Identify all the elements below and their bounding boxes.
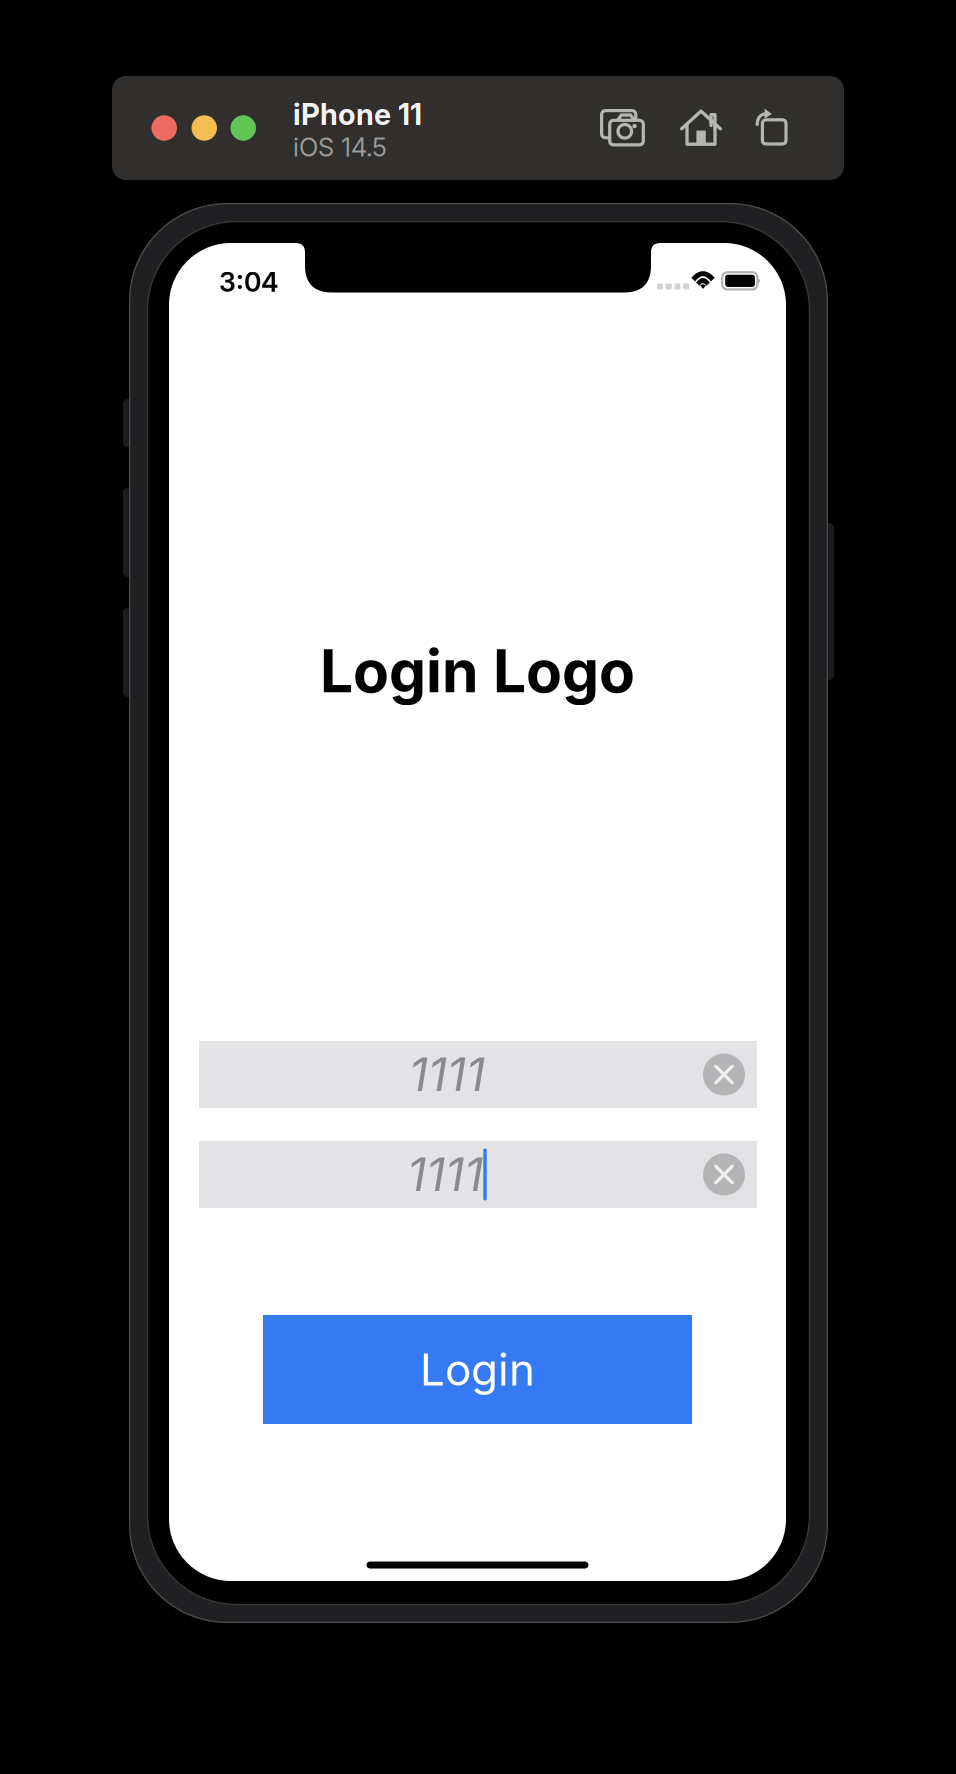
button[interactable]: Zoom	[112, 76, 844, 180]
button[interactable]: Screenshot	[112, 76, 844, 180]
button[interactable]: Rotate	[112, 76, 844, 180]
button[interactable]: Clear text	[692, 1141, 756, 1208]
button[interactable]: Minimise	[112, 76, 844, 180]
staticText: iPhone 11	[293, 96, 422, 132]
staticText: iOS 14.5	[293, 132, 387, 163]
staticText: 1111	[409, 1046, 485, 1103]
button[interactable]: Close	[112, 76, 844, 180]
staticText: Login Logo	[320, 635, 635, 706]
staticText: Login	[420, 1343, 535, 1396]
button[interactable]: Login	[263, 1315, 692, 1424]
button[interactable]: Home	[112, 76, 844, 180]
button[interactable]: Clear text	[692, 1041, 756, 1108]
staticText: 1111	[407, 1146, 483, 1203]
staticText: 3:04	[219, 266, 279, 298]
